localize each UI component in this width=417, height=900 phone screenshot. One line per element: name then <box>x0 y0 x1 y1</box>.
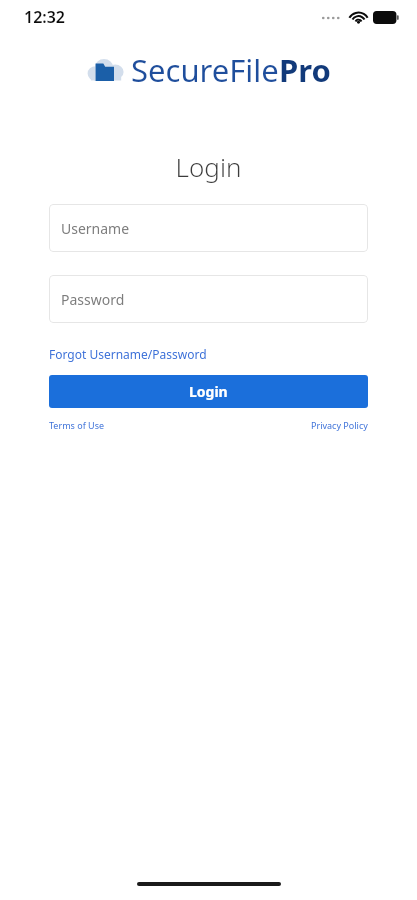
button[interactable]: Login <box>49 375 368 408</box>
staticText: 12:32 <box>24 6 66 28</box>
staticText: Login <box>0 149 417 184</box>
button[interactable]: Password <box>49 275 368 323</box>
button[interactable]: Privacy Policy <box>311 419 368 431</box>
staticText: Username <box>61 219 130 238</box>
staticText: Forgot Username/Password <box>49 346 207 362</box>
staticText: Pro <box>279 49 331 91</box>
staticText: SecureFile <box>131 49 279 91</box>
staticText: Login <box>189 382 228 401</box>
staticText: Privacy Policy <box>311 419 368 431</box>
staticText: Terms of Use <box>49 419 105 431</box>
button[interactable]: Terms of Use <box>49 419 105 431</box>
button[interactable]: Forgot Username/Password <box>49 345 207 363</box>
button[interactable]: Username <box>49 204 368 252</box>
staticText: Password <box>61 290 125 309</box>
